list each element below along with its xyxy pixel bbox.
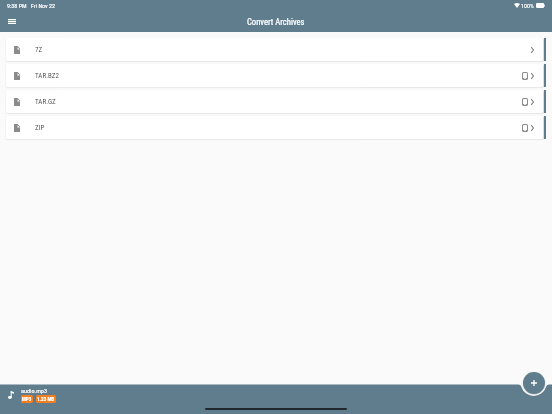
staticText: ZIP — [35, 124, 45, 132]
staticText: TAR.BZ2 — [35, 72, 59, 80]
button[interactable]: TAR.GZ — [6, 90, 543, 113]
button[interactable]: TAR.BZ2 — [6, 64, 543, 87]
button[interactable]: Open navigation menu — [4, 14, 20, 30]
staticText: Convert Archives — [247, 17, 305, 27]
staticText: MP3 — [22, 396, 32, 402]
staticText: Fri Nov 22 — [31, 2, 55, 9]
staticText: 1.23 MB — [37, 396, 55, 402]
staticText: audio.mp3 — [21, 387, 47, 394]
staticText: 9:38 PM — [7, 2, 27, 9]
staticText: 100% — [521, 2, 534, 9]
button[interactable]: 7Z — [6, 38, 543, 61]
staticText: TAR.GZ — [35, 98, 56, 106]
staticText: 7Z — [35, 46, 43, 54]
button[interactable]: ZIP — [6, 116, 543, 139]
button[interactable]: Add — [523, 372, 545, 394]
